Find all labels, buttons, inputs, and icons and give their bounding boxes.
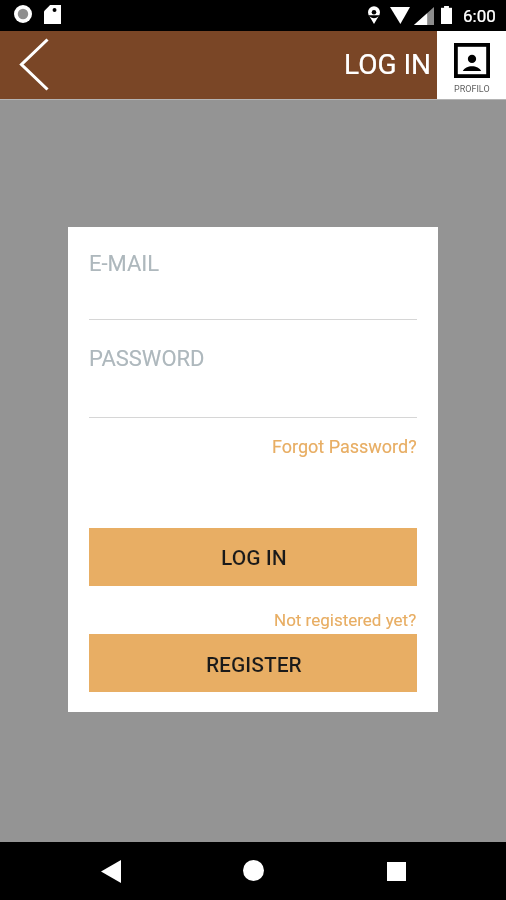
button[interactable]: REGISTER [89,634,417,692]
button[interactable]: Home [216,842,290,900]
button[interactable]: PASSWORD [89,346,417,418]
button[interactable]: Back [0,31,64,99]
staticText: LOG IN [221,546,287,571]
button[interactable]: E-MAIL [89,251,417,320]
staticText: E-MAIL [89,251,160,277]
staticText: LOG IN [344,48,432,81]
staticText: Forgot Password? [272,436,417,457]
button[interactable]: Not registered yet? [274,610,417,630]
button[interactable]: Back [74,842,148,900]
button[interactable]: Recent apps [360,842,434,900]
button[interactable]: LOG IN [89,528,417,586]
staticText: Not registered yet? [274,610,417,630]
staticText: 6:00 [463,6,496,26]
button[interactable]: Profile [437,31,506,99]
button[interactable]: Forgot Password? [272,436,417,457]
staticText: PROFILO [454,84,490,95]
staticText: REGISTER [206,653,302,678]
staticText: PASSWORD [89,346,205,372]
